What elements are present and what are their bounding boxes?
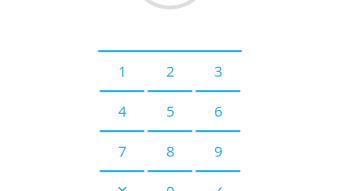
button[interactable]: 2	[146, 52, 194, 92]
button[interactable]: 5	[146, 92, 194, 132]
button[interactable]: 6	[194, 92, 242, 132]
button[interactable]: 1	[98, 52, 146, 92]
button[interactable]: ✓	[194, 172, 242, 191]
staticText: 4	[118, 101, 126, 121]
button[interactable]: 7	[98, 132, 146, 172]
button[interactable]: ✕	[98, 172, 146, 191]
staticText: ✕	[116, 183, 128, 191]
staticText: 9	[214, 141, 222, 161]
button[interactable]: 8	[146, 132, 194, 172]
staticText: 0	[166, 181, 174, 191]
button[interactable]: 4	[98, 92, 146, 132]
staticText: 5	[166, 101, 174, 121]
button[interactable]: 3	[194, 52, 242, 92]
staticText: 2	[166, 61, 174, 81]
staticText: 7	[118, 141, 126, 161]
staticText: 8	[166, 141, 174, 161]
staticText: 1	[118, 61, 126, 81]
staticText: 6	[214, 101, 222, 121]
button[interactable]: 9	[194, 132, 242, 172]
staticText: ✓	[212, 183, 224, 191]
staticText: 3	[214, 61, 222, 81]
button[interactable]: 0	[146, 172, 194, 191]
